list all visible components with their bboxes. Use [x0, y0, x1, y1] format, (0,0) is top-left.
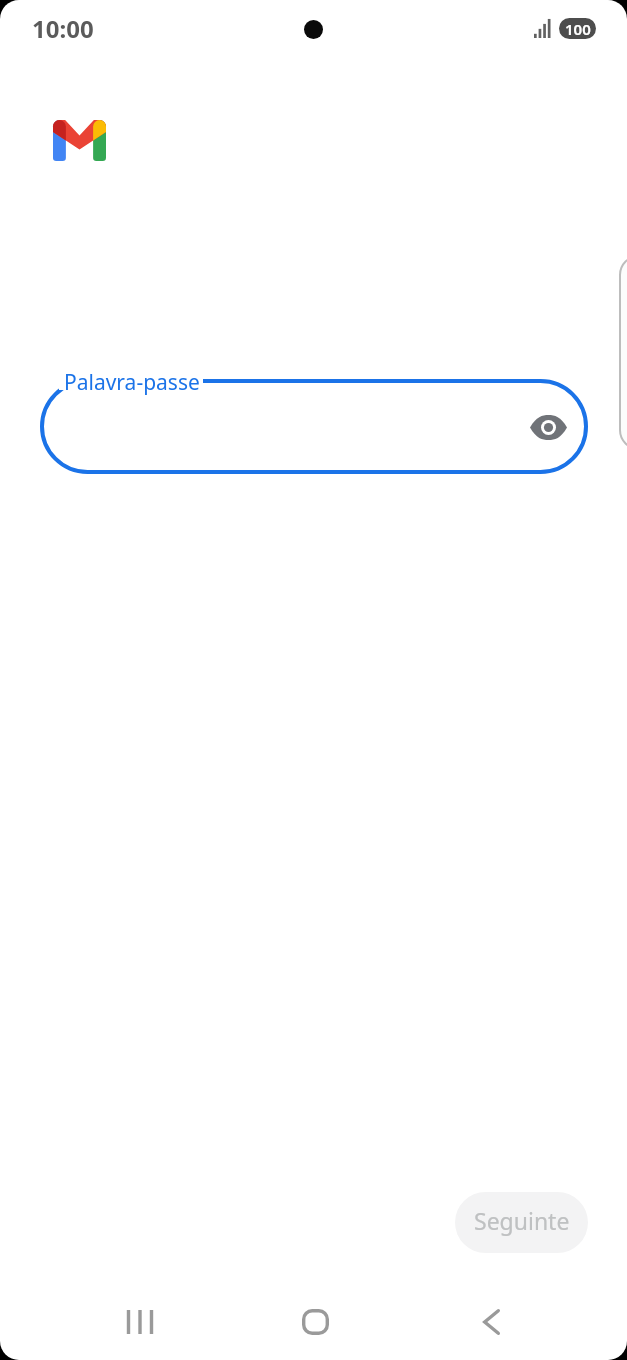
staticText: 10:00: [32, 12, 94, 45]
button[interactable]: Mostrar palavra-passe: [522, 401, 574, 453]
staticText: 100: [565, 19, 591, 39]
button[interactable]: Recentes: [110, 1292, 170, 1352]
button[interactable]: Início: [285, 1292, 345, 1352]
button[interactable]: Voltar: [461, 1292, 521, 1352]
staticText: Seguinte: [474, 1205, 570, 1236]
button[interactable]: Seguinte: [455, 1192, 588, 1253]
staticText: Palavra-passe: [64, 368, 200, 397]
